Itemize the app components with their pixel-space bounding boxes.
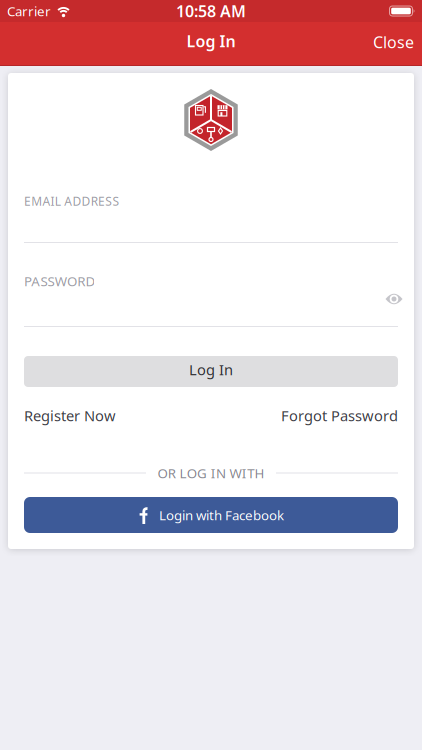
button[interactable]: Show password: [380, 292, 398, 306]
button[interactable]: Log In: [8, 356, 414, 387]
staticText: Forgot Password: [281, 406, 398, 425]
button[interactable]: PASSWORD: [8, 271, 414, 327]
staticText: Register Now: [24, 406, 116, 425]
staticText: EMAIL ADDRESS: [24, 193, 119, 209]
staticText: Close: [373, 31, 414, 53]
button[interactable]: Forgot Password: [281, 409, 398, 429]
staticText: 10:58 AM: [176, 0, 246, 22]
staticText: Carrier: [7, 2, 51, 20]
staticText: Login with Facebook: [159, 506, 284, 524]
staticText: Log In: [186, 30, 235, 52]
button[interactable]: EMAIL ADDRESS: [8, 191, 414, 243]
button[interactable]: Register Now: [24, 409, 116, 429]
button[interactable]: Close: [373, 33, 422, 55]
button[interactable]: Login with Facebook: [8, 497, 414, 533]
staticText: PASSWORD: [24, 272, 95, 290]
staticText: Log In: [189, 360, 233, 379]
staticText: OR LOG IN WITH: [158, 464, 264, 482]
